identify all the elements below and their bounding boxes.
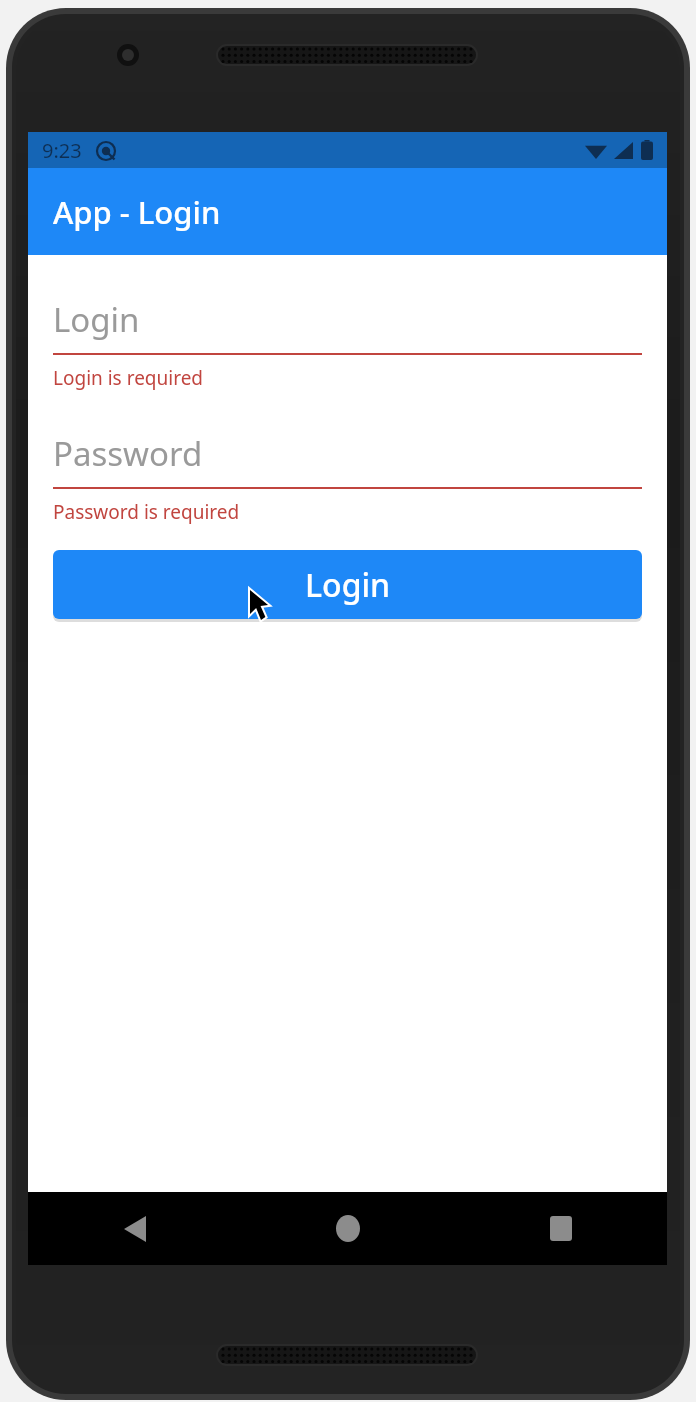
staticText: 9:23	[42, 137, 82, 164]
button[interactable]: Login	[53, 550, 642, 619]
button[interactable]: Home	[241, 1192, 454, 1265]
staticText: Password is required	[53, 499, 240, 525]
staticText: Password	[53, 431, 203, 476]
staticText: Login	[53, 297, 140, 342]
button[interactable]: Back	[28, 1192, 241, 1265]
staticText: Login is required	[53, 365, 204, 391]
button[interactable]: Recents	[454, 1192, 667, 1265]
button[interactable]: Login	[53, 285, 642, 391]
staticText: Login	[305, 563, 391, 607]
staticText: App - Login	[53, 191, 221, 233]
button[interactable]: Password	[53, 419, 642, 525]
